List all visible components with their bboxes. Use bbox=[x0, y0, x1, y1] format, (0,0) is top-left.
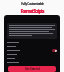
staticText: Fully Customizable bbox=[21, 2, 44, 6]
staticText: Get Started bbox=[25, 67, 40, 71]
staticText: Format Scripts bbox=[20, 8, 44, 15]
staticText: Format Scripts bbox=[20, 8, 44, 15]
button[interactable] bbox=[4, 56, 60, 60]
button[interactable]: Toggle bbox=[4, 48, 60, 52]
button[interactable] bbox=[4, 40, 60, 44]
button[interactable]: Toggle bbox=[52, 49, 57, 52]
button[interactable]: Get Started bbox=[8, 66, 56, 72]
button[interactable] bbox=[4, 44, 60, 48]
button[interactable] bbox=[4, 52, 60, 56]
staticText: Format Scripts bbox=[20, 8, 44, 15]
staticText: Fully Customizable bbox=[21, 2, 44, 6]
button[interactable] bbox=[7, 23, 57, 39]
button[interactable] bbox=[4, 60, 60, 64]
